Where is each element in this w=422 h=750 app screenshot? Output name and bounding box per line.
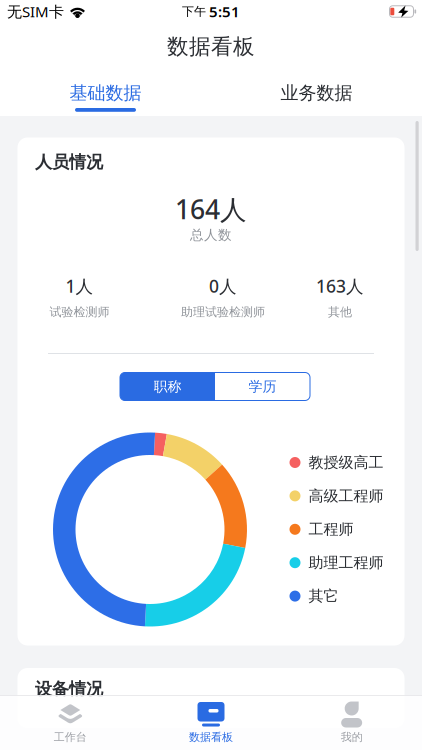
- staticText: 其它: [308, 587, 338, 606]
- button[interactable]: 基础数据: [0, 83, 211, 112]
- button[interactable]: 数据看板: [141, 702, 281, 743]
- staticText: 基础数据: [69, 82, 141, 104]
- staticText: 我的: [341, 730, 363, 744]
- staticText: 1人: [65, 274, 93, 298]
- staticText: 助理工程师: [308, 553, 383, 572]
- staticText: 其他: [328, 304, 352, 319]
- staticText: 职称: [153, 378, 181, 395]
- staticText: 0人: [209, 274, 237, 298]
- button[interactable]: 工作台: [0, 702, 141, 743]
- staticText: 教授级高工: [308, 453, 383, 472]
- staticText: 工作台: [54, 730, 87, 744]
- staticText: 总人数: [190, 226, 232, 243]
- button[interactable]: 我的: [281, 702, 422, 743]
- staticText: 试验检测师: [49, 304, 109, 319]
- button[interactable]: 业务数据: [211, 83, 422, 112]
- staticText: 数据看板: [189, 730, 233, 744]
- staticText: 无SIM卡: [7, 1, 64, 22]
- staticText: 164人: [175, 191, 247, 227]
- staticText: 5:51: [209, 1, 240, 22]
- staticText: 数据看板: [167, 33, 255, 60]
- staticText: 业务数据: [280, 82, 352, 104]
- staticText: 助理试验检测师: [181, 304, 265, 319]
- staticText: 设备情况: [35, 678, 103, 700]
- staticText: 高级工程师: [308, 486, 383, 505]
- staticText: 学历: [248, 378, 276, 395]
- staticText: 人员情况: [35, 151, 103, 173]
- button[interactable]: 学历: [215, 372, 310, 400]
- staticText: 下午: [182, 4, 206, 19]
- staticText: 工程师: [308, 520, 353, 539]
- button[interactable]: 职称: [120, 372, 215, 400]
- staticText: 163人: [316, 274, 364, 298]
